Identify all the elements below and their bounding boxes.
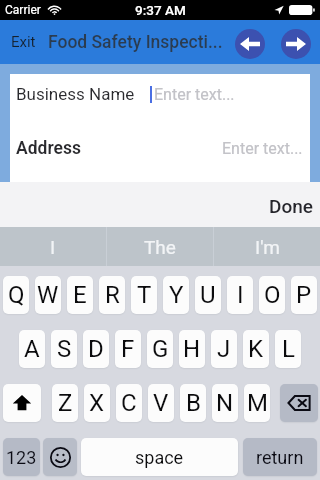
button[interactable]: Done [253, 186, 320, 224]
button[interactable]: Emoji [43, 438, 77, 476]
button[interactable]: X [84, 384, 110, 422]
staticText: H [183, 335, 201, 363]
button[interactable]: R [99, 276, 125, 314]
button[interactable]: N [212, 384, 238, 422]
button[interactable]: P [291, 276, 317, 314]
button[interactable]: Shift [3, 384, 41, 422]
staticText: R [105, 281, 120, 309]
button[interactable]: Address [10, 128, 310, 182]
staticText: I'm [255, 236, 280, 258]
staticText: N [216, 389, 234, 417]
staticText: P [296, 281, 312, 309]
button[interactable]: space [81, 438, 238, 476]
staticText: Food Safety Inspecti... [48, 32, 223, 53]
button[interactable]: D [83, 330, 109, 368]
button[interactable]: A [19, 330, 45, 368]
button[interactable]: V [148, 384, 174, 422]
button[interactable]: S [51, 330, 77, 368]
button[interactable]: Business Name [10, 74, 310, 128]
staticText: W [37, 281, 59, 309]
staticText: J [217, 335, 231, 363]
staticText: 123 [6, 447, 37, 468]
staticText: I [237, 281, 244, 309]
staticText: E [73, 281, 87, 309]
button[interactable]: T [131, 276, 157, 314]
staticText: Enter text... [222, 139, 303, 158]
button[interactable]: Backspace [280, 384, 318, 422]
staticText: 9:37 AM [135, 2, 186, 18]
button[interactable]: W [35, 276, 61, 314]
button[interactable]: return [243, 438, 317, 476]
button[interactable]: Back [235, 29, 265, 59]
button[interactable]: H [179, 330, 205, 368]
button[interactable]: I [0, 227, 106, 266]
button[interactable]: B [180, 384, 206, 422]
button[interactable]: F [115, 330, 141, 368]
staticText: G [152, 335, 169, 363]
staticText: Carrier [5, 3, 41, 17]
staticText: U [200, 281, 216, 309]
staticText: V [153, 389, 169, 417]
staticText: Address [16, 138, 81, 159]
staticText: return [256, 447, 304, 468]
button[interactable]: Z [52, 384, 78, 422]
staticText: Y [169, 281, 184, 309]
staticText: D [88, 335, 104, 363]
staticText: Z [58, 389, 73, 417]
button[interactable]: The [107, 227, 213, 266]
staticText: Q [8, 281, 25, 309]
staticText: F [121, 335, 135, 363]
staticText: M [247, 389, 268, 417]
staticText: The [144, 236, 176, 258]
button[interactable]: U [195, 276, 221, 314]
button[interactable]: 123 [3, 438, 40, 476]
staticText: C [121, 389, 137, 417]
button[interactable]: L [275, 330, 301, 368]
button[interactable]: Forward [281, 29, 311, 59]
staticText: space [135, 447, 184, 468]
staticText: B [186, 389, 201, 417]
button[interactable]: Y [163, 276, 189, 314]
button[interactable]: M [244, 384, 270, 422]
button[interactable]: E [67, 276, 93, 314]
button[interactable]: K [243, 330, 269, 368]
button[interactable]: J [211, 330, 237, 368]
button[interactable]: Exit [0, 27, 42, 57]
staticText: X [89, 389, 105, 417]
staticText: L [282, 335, 295, 363]
button[interactable]: I'm [214, 227, 320, 266]
button[interactable]: I [227, 276, 253, 314]
staticText: A [24, 335, 40, 363]
staticText: I [50, 236, 56, 258]
staticText: Enter text... [154, 85, 235, 104]
staticText: K [248, 335, 264, 363]
staticText: S [57, 335, 72, 363]
button[interactable]: G [147, 330, 173, 368]
staticText: O [264, 281, 281, 309]
staticText: T [137, 281, 152, 309]
button[interactable]: Q [3, 276, 29, 314]
staticText: Business Name [16, 84, 135, 104]
button[interactable]: O [259, 276, 285, 314]
button[interactable]: C [116, 384, 142, 422]
